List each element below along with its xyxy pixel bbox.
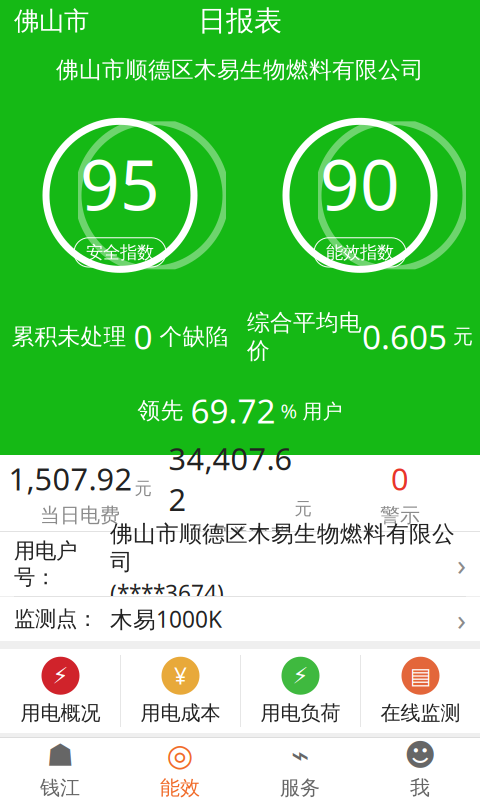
staticText: 元 [134, 478, 151, 499]
staticText: 领先 [137, 397, 190, 424]
staticText: 用电概况 [20, 701, 100, 725]
staticText: 钱江 [40, 776, 80, 800]
button[interactable]: ☻ [360, 738, 480, 800]
staticText: ⚡︎ [52, 663, 68, 689]
staticText: 1,507.92 [8, 458, 132, 499]
staticText: ☻ [404, 738, 436, 773]
button[interactable]: ▤ [360, 649, 480, 733]
staticText: 综合平均电价 [247, 309, 362, 364]
staticText: 木易1000K [110, 604, 222, 634]
button[interactable]: 用电户号： [0, 532, 480, 596]
staticText: 用电成本 [140, 701, 220, 725]
staticText: 日报表 [198, 4, 282, 38]
staticText: 元 [447, 324, 473, 349]
staticText: 当月总电费 [190, 523, 290, 548]
staticText: 警示 [380, 503, 420, 528]
staticText: 69.72 [190, 388, 275, 433]
staticText: 能效 [160, 776, 200, 800]
staticText: › [457, 544, 466, 583]
staticText: 我 [410, 776, 430, 800]
staticText: 佛山市 [14, 5, 89, 36]
staticText: ¥ [174, 661, 187, 691]
button[interactable]: ☗ [0, 738, 120, 800]
staticText: (****3674) [110, 578, 224, 608]
staticText: % 用户 [275, 397, 342, 424]
staticText: › [457, 599, 466, 638]
staticText: 累积未处理 [11, 323, 133, 351]
staticText: 监测点： [14, 606, 98, 632]
staticText: 0 [133, 315, 152, 359]
staticText: ◎ [166, 738, 193, 773]
staticText: 95 [80, 138, 160, 230]
staticText: 34,407.62 [168, 438, 292, 519]
button[interactable]: ¥ [120, 649, 240, 733]
staticText: 当日电费 [40, 503, 120, 528]
staticText: 用电负荷 [260, 701, 340, 725]
staticText: 元 [294, 498, 311, 519]
staticText: 佛山市顺德区木易生物燃料有限公司 [56, 56, 424, 84]
staticText: ⌁ [291, 738, 309, 773]
button[interactable]: 佛山市 [0, 0, 89, 42]
staticText: ▤ [410, 663, 431, 689]
staticText: ⚡︎ [292, 663, 308, 689]
staticText: 个缺陷 [152, 323, 228, 351]
staticText: 在线监测 [380, 701, 460, 725]
button[interactable]: 监测点： [0, 597, 480, 641]
button[interactable]: ⚡︎ [240, 649, 360, 733]
staticText: 90 [320, 138, 400, 230]
button[interactable]: ⚡︎ [0, 649, 120, 733]
staticText: 0.605 [362, 315, 447, 359]
button[interactable]: ⌁ [240, 738, 360, 800]
staticText: 能效指数 [326, 242, 394, 263]
staticText: ☗ [46, 738, 73, 773]
button[interactable]: ◎ [120, 738, 240, 800]
staticText: 0 [391, 458, 409, 499]
staticText: 用电户号： [14, 538, 77, 590]
staticText: 服务 [280, 776, 320, 800]
staticText: 安全指数 [86, 242, 154, 263]
staticText: 佛山市顺德区木易生物燃料有限公司 [110, 520, 455, 576]
